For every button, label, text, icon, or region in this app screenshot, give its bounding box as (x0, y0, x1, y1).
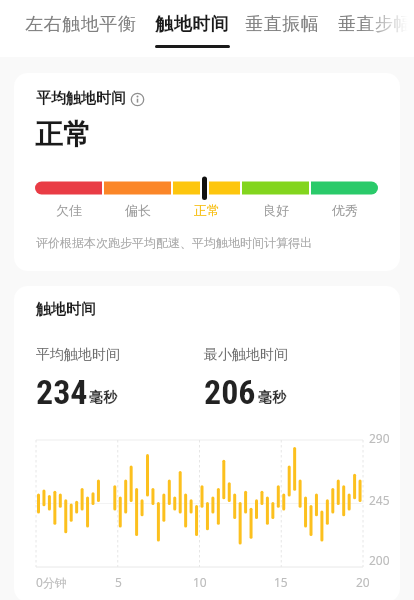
staticText: 毫秒 (89, 389, 117, 407)
staticText: 偏长 (125, 202, 151, 218)
staticText: 左右触地平衡 (25, 13, 136, 36)
staticText: 10 (193, 574, 207, 590)
staticText: 20 (356, 574, 370, 590)
button[interactable]: 触地时间 (155, 0, 229, 48)
staticText: 5 (115, 574, 122, 590)
staticText: 206 (204, 372, 256, 412)
staticText: 正常 (194, 202, 220, 218)
staticText: 200 (369, 552, 390, 568)
staticText: 0分钟 (36, 574, 67, 590)
staticText: 优秀 (332, 202, 358, 218)
staticText: 毫秒 (258, 389, 286, 407)
staticText: 垂直振幅 (245, 13, 319, 36)
staticText: 良好 (263, 202, 289, 218)
staticText: 最小触地时间 (204, 346, 288, 364)
staticText: 欠佳 (56, 202, 82, 218)
staticText: 234 (36, 372, 88, 412)
staticText: 245 (369, 492, 390, 508)
staticText: 触地时间 (36, 300, 96, 319)
staticText: 正常 (35, 117, 91, 152)
staticText: 平均触地时间 (36, 89, 126, 108)
staticText: 触地时间 (155, 13, 229, 36)
staticText: 评价根据本次跑步平均配速、平均触地时间计算得出 (36, 235, 312, 250)
staticText: 290 (369, 430, 390, 446)
button[interactable]: 左右触地平衡 (25, 0, 136, 48)
staticText: 15 (274, 574, 288, 590)
staticText: 垂直步幅比 (338, 13, 414, 36)
button[interactable] (128, 90, 147, 109)
staticText: 平均触地时间 (36, 346, 120, 364)
button[interactable]: 垂直振幅 (245, 0, 319, 48)
button[interactable]: 垂直步幅比 (338, 0, 414, 48)
